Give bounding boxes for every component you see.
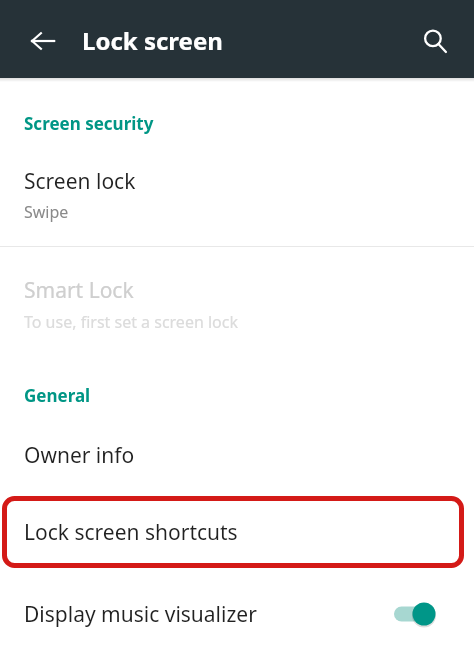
staticText: Display music visualizer: [24, 600, 257, 629]
button[interactable]: Owner info: [0, 424, 474, 486]
button[interactable]: Screen lock: [0, 154, 474, 234]
button[interactable]: Display music visualizer: [0, 579, 474, 648]
button[interactable]: Lock screen shortcuts: [2, 496, 464, 568]
staticText: To use, first set a screen lock: [24, 311, 239, 333]
button[interactable]: Back: [19, 17, 67, 65]
staticText: Lock screen shortcuts: [24, 518, 238, 547]
staticText: Lock screen: [82, 24, 223, 57]
staticText: Owner info: [24, 441, 135, 470]
staticText: Swipe: [24, 201, 69, 223]
button[interactable]: Display music visualizer toggle: [392, 594, 452, 634]
staticText: Screen lock: [24, 167, 136, 196]
staticText: Smart Lock: [24, 276, 134, 305]
button[interactable]: Search: [411, 17, 459, 65]
staticText: General: [24, 384, 91, 407]
staticText: Screen security: [24, 112, 154, 135]
